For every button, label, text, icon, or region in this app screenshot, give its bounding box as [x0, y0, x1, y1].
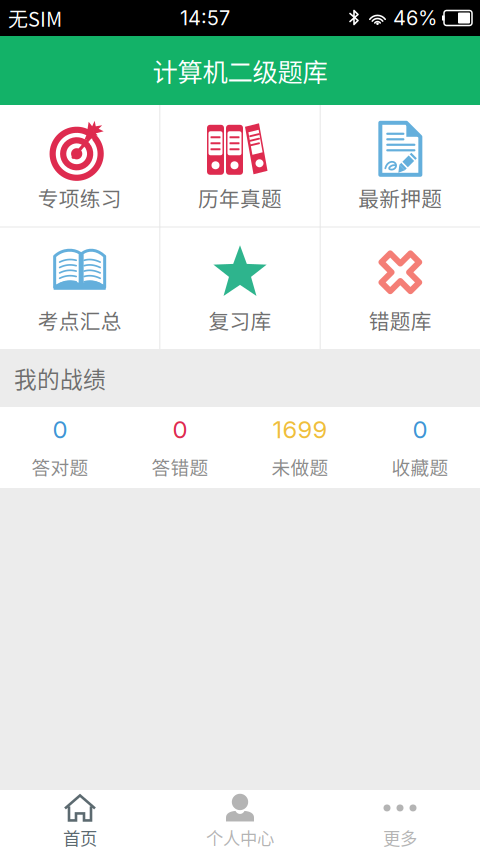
- staticText: 复习库: [208, 305, 271, 335]
- button[interactable]: 更多: [320, 790, 480, 853]
- staticText: 答错题: [151, 453, 208, 480]
- button[interactable]: 复习库: [160, 227, 320, 349]
- staticText: 计算机二级题库: [152, 52, 327, 89]
- button[interactable]: 个人中心: [160, 790, 320, 853]
- staticText: 专项练习: [38, 183, 122, 213]
- staticText: 46%: [393, 6, 437, 30]
- staticText: 更多: [383, 825, 417, 850]
- button[interactable]: 错题库: [321, 227, 480, 349]
- button[interactable]: 最新押题: [321, 105, 480, 226]
- staticText: 0: [172, 415, 187, 444]
- staticText: 收藏题: [391, 453, 448, 480]
- staticText: 考点汇总: [38, 305, 122, 335]
- staticText: 无SIM: [8, 3, 62, 32]
- button[interactable]: 历年真题: [160, 105, 320, 226]
- staticText: 未做题: [271, 453, 328, 480]
- staticText: 1699: [272, 415, 327, 444]
- staticText: 0: [412, 415, 427, 444]
- staticText: 错题库: [369, 305, 432, 335]
- button[interactable]: 专项练习: [0, 105, 159, 226]
- staticText: 答对题: [31, 453, 88, 480]
- staticText: 0: [52, 415, 67, 444]
- staticText: 首页: [63, 825, 97, 850]
- staticText: 历年真题: [198, 183, 282, 213]
- staticText: 我的战绩: [14, 362, 106, 394]
- button[interactable]: 首页: [0, 790, 160, 853]
- staticText: 最新押题: [358, 183, 442, 213]
- staticText: 个人中心: [206, 825, 274, 850]
- staticText: 14:57: [180, 6, 230, 30]
- button[interactable]: 考点汇总: [0, 227, 159, 349]
